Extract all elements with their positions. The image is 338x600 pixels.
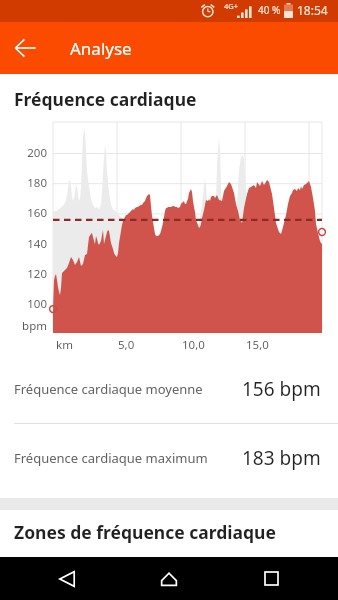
staticText: 160 [16, 205, 47, 221]
staticText: 10,0 [182, 337, 205, 353]
staticText: 100 [16, 296, 47, 312]
staticText: 40 % [258, 3, 281, 17]
staticText: 15,0 [246, 337, 269, 353]
button[interactable]: Fréquence cardiaque maximum [0, 424, 338, 492]
staticText: 18:54 [297, 2, 328, 18]
button[interactable]: Back [32, 557, 102, 600]
staticText: Zones de fréquence cardiaque [14, 520, 276, 544]
staticText: 183 bpm [242, 445, 321, 471]
staticText: bpm [16, 318, 47, 334]
staticText: Analyse [70, 37, 132, 60]
staticText: 200 [16, 145, 47, 161]
staticText: 4G+ [224, 1, 239, 11]
staticText: Fréquence cardiaque maximum [14, 449, 242, 467]
staticText: 120 [16, 266, 47, 282]
staticText: 180 [16, 175, 47, 191]
staticText: 156 bpm [242, 376, 321, 402]
button[interactable]: Home [134, 557, 204, 600]
button[interactable]: Recent apps [236, 557, 306, 600]
staticText: 140 [16, 236, 47, 252]
staticText: km [56, 337, 73, 353]
staticText: Fréquence cardiaque [14, 87, 197, 111]
button[interactable]: Fréquence cardiaque moyenne [0, 355, 338, 423]
staticText: Fréquence cardiaque moyenne [14, 380, 242, 398]
button[interactable]: Back [0, 22, 52, 74]
staticText: 5,0 [118, 337, 135, 353]
